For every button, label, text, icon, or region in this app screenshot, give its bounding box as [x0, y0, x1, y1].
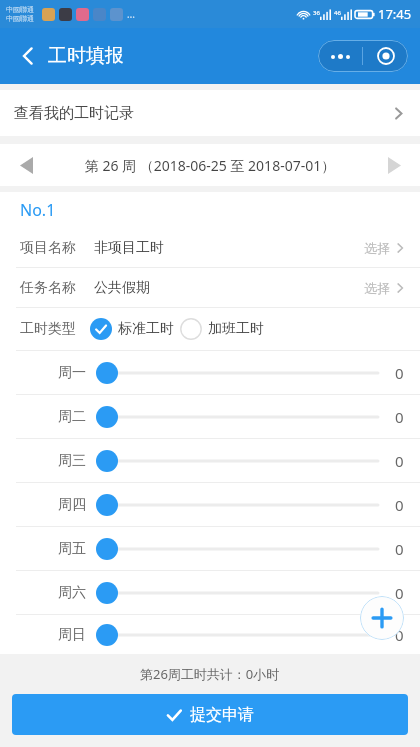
staticText: 周二 [58, 408, 86, 426]
button[interactable] [96, 491, 378, 519]
staticText: 选择 [364, 280, 390, 296]
staticText: 第 26 周 （2018-06-25 至 2018-07-01） [52, 156, 368, 175]
staticText: … [127, 7, 135, 21]
staticText: 周日 [58, 626, 86, 644]
staticText: 选择 [364, 240, 390, 256]
button[interactable]: Close [363, 40, 408, 72]
staticText: 任务名称 [20, 279, 76, 297]
staticText: 公共假期 [94, 279, 150, 297]
button[interactable]: 提交申请 [12, 694, 408, 735]
staticText: 0 [395, 583, 404, 603]
staticText: 加班工时 [208, 320, 264, 338]
staticText: 0 [395, 625, 404, 645]
staticText: 0 [395, 451, 404, 471]
button[interactable]: Back [8, 36, 48, 76]
button[interactable]: Add entry [360, 596, 404, 640]
staticText: 周六 [58, 584, 86, 602]
button[interactable]: Next week [368, 144, 420, 186]
staticText: 0 [395, 539, 404, 559]
button[interactable] [96, 621, 378, 649]
staticText: 中國聯通 [6, 5, 34, 14]
staticText: 工时填报 [48, 44, 124, 68]
staticText: 17:45 [378, 5, 412, 23]
staticText: 36 [313, 9, 320, 17]
staticText: 0 [395, 495, 404, 515]
staticText: 非项目工时 [94, 239, 164, 257]
button[interactable] [96, 579, 378, 607]
staticText: 0 [395, 407, 404, 427]
staticText: 项目名称 [20, 239, 76, 257]
staticText: 周一 [58, 364, 86, 382]
staticText: 查看我的工时记录 [14, 104, 134, 123]
button[interactable] [96, 359, 378, 387]
staticText: 第26周工时共计：0小时 [140, 665, 280, 683]
staticText: 中國聯通 [6, 14, 34, 23]
button[interactable]: 项目名称 [0, 228, 420, 267]
staticText: 周四 [58, 496, 86, 514]
button[interactable]: 标准工时 [90, 318, 174, 340]
button[interactable] [96, 535, 378, 563]
button[interactable]: Previous week [0, 144, 52, 186]
staticText: 提交申请 [190, 705, 254, 725]
button[interactable]: 查看我的工时记录 [0, 90, 420, 136]
staticText: 工时类型 [20, 320, 76, 338]
button[interactable]: 任务名称 [0, 268, 420, 307]
staticText: 46 [334, 9, 341, 17]
button[interactable]: 加班工时 [180, 318, 264, 340]
staticText: 0 [395, 363, 404, 383]
staticText: 周三 [58, 452, 86, 470]
button[interactable] [96, 447, 378, 475]
staticText: No.1 [20, 199, 56, 221]
button[interactable] [96, 403, 378, 431]
staticText: 标准工时 [118, 320, 174, 338]
button[interactable]: More [318, 40, 362, 72]
staticText: 周五 [58, 540, 86, 558]
